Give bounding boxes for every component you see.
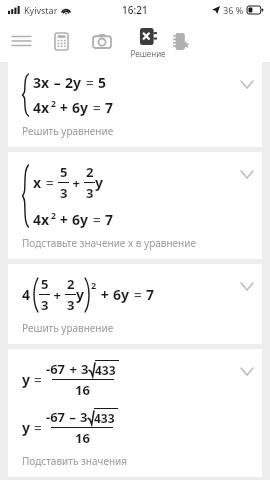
staticText: y: [95, 173, 103, 192]
staticText: 3: [41, 296, 49, 314]
button[interactable]: Calculator: [44, 24, 78, 58]
staticText: 433: [94, 410, 115, 426]
staticText: 5: [41, 275, 49, 293]
staticText: 3x: [33, 73, 50, 92]
staticText: 3: [81, 360, 89, 378]
staticText: =: [42, 173, 58, 192]
staticText: 6y: [72, 210, 89, 229]
staticText: -67: [46, 360, 66, 378]
staticText: 2: [51, 210, 56, 222]
button[interactable]: Menu: [4, 24, 38, 58]
staticText: +: [56, 210, 72, 229]
staticText: 5: [60, 163, 68, 181]
staticText: –: [66, 408, 80, 426]
button[interactable]: Решение: [119, 28, 177, 59]
staticText: +: [56, 98, 72, 117]
staticText: Решить уравнение: [22, 321, 114, 335]
staticText: 7: [105, 98, 114, 117]
staticText: y: [22, 370, 30, 389]
staticText: 433: [95, 362, 116, 378]
staticText: 16: [75, 429, 90, 447]
button[interactable]: y: [8, 349, 262, 477]
staticText: Подставьте значение x в уравнение: [22, 236, 196, 250]
staticText: y: [76, 285, 84, 304]
staticText: =: [30, 418, 46, 437]
button[interactable]: Camera: [85, 24, 119, 58]
staticText: Решить уравнение: [22, 124, 114, 138]
staticText: 4x: [33, 98, 50, 117]
staticText: Kyivstar: [24, 4, 58, 16]
staticText: -67: [46, 408, 66, 426]
staticText: 2: [51, 98, 56, 110]
staticText: Решение: [130, 48, 166, 59]
staticText: 7: [105, 210, 114, 229]
staticText: 3: [67, 296, 75, 314]
staticText: 2: [67, 275, 75, 293]
staticText: 2y: [65, 73, 82, 92]
staticText: 5: [98, 73, 107, 92]
staticText: 2: [86, 163, 94, 181]
button[interactable]: 4: [8, 264, 262, 344]
staticText: +: [66, 360, 81, 378]
staticText: 6y: [72, 98, 89, 117]
staticText: 4: [22, 285, 31, 304]
staticText: =: [130, 285, 146, 304]
staticText: 2: [91, 279, 97, 291]
staticText: +: [50, 286, 65, 304]
staticText: =: [30, 370, 46, 389]
staticText: 16:21: [122, 3, 148, 17]
staticText: Подставить значения: [22, 454, 128, 468]
staticText: =: [89, 98, 105, 117]
staticText: +: [69, 174, 84, 192]
button[interactable]: Saved problems: [164, 24, 198, 58]
staticText: –: [50, 73, 65, 92]
staticText: x: [33, 173, 42, 192]
staticText: =: [82, 73, 98, 92]
staticText: +: [97, 285, 113, 304]
staticText: 16: [75, 381, 90, 399]
button[interactable]: 3x: [8, 62, 262, 147]
staticText: y: [22, 418, 30, 437]
staticText: 4x: [33, 210, 50, 229]
staticText: 3: [80, 408, 88, 426]
button[interactable]: x: [8, 152, 262, 259]
staticText: =: [89, 210, 105, 229]
staticText: 3: [86, 184, 94, 202]
staticText: 3: [60, 184, 68, 202]
staticText: 6y: [113, 285, 130, 304]
staticText: 36 %: [223, 4, 244, 16]
staticText: 7: [146, 285, 155, 304]
